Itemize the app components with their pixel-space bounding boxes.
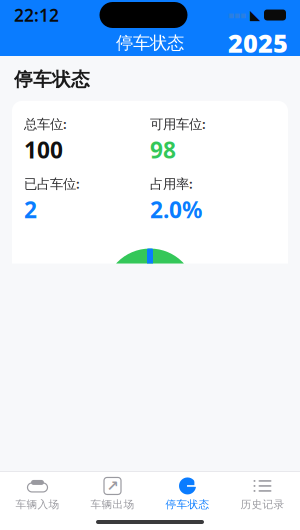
button[interactable]: 车辆入场 (0, 473, 75, 515)
staticText: 总车位: (24, 115, 67, 133)
staticText: 98 (150, 135, 176, 165)
staticText: 历史记录 (240, 498, 284, 511)
staticText: 可用车位: (150, 115, 206, 133)
staticText: ↗ (106, 478, 118, 494)
staticText: 22:12 (14, 3, 59, 26)
staticText: 占用率: (150, 175, 193, 192)
staticText: 2.0% (150, 194, 202, 224)
staticText: 停车状态 (14, 68, 90, 91)
staticText: 已占车位: (24, 175, 80, 192)
button[interactable]: ↗ (75, 473, 150, 515)
staticText: 2 (24, 194, 37, 224)
staticText: 停车状态 (165, 498, 209, 511)
button[interactable]: 停车状态 (150, 473, 225, 515)
staticText: ◣ (250, 7, 260, 22)
staticText: 100 (24, 135, 63, 165)
staticText: 停车状态 (116, 32, 184, 54)
staticText: 车辆入场 (15, 498, 59, 511)
staticText: 2025 (228, 26, 288, 60)
staticText: ▪▪▪ (228, 10, 246, 20)
staticText: 车辆出场 (90, 498, 134, 511)
button[interactable]: 历史记录 (225, 473, 300, 515)
